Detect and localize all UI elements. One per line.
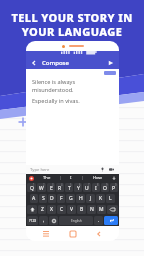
staticText: Y xyxy=(77,185,80,192)
button[interactable]: Key xyxy=(27,205,37,214)
button[interactable]: 4 xyxy=(56,183,64,192)
button[interactable]: 7 xyxy=(83,183,91,192)
button[interactable]: B xyxy=(77,205,86,214)
staticText: Q xyxy=(30,185,34,192)
button[interactable]: N xyxy=(87,205,96,214)
button[interactable]: J xyxy=(86,194,95,203)
staticText: English xyxy=(71,219,82,223)
button[interactable]: 6 xyxy=(74,183,82,192)
button[interactable]: C xyxy=(57,205,66,214)
staticText: U xyxy=(85,185,89,192)
staticText: The xyxy=(43,175,51,181)
staticText: , xyxy=(43,217,45,224)
staticText: Silence is always misunderstood. xyxy=(32,78,113,94)
staticText: C xyxy=(60,206,64,213)
button[interactable]: Emoji xyxy=(39,216,48,225)
button[interactable]: Translate xyxy=(104,71,116,75)
staticText: T xyxy=(68,185,71,192)
staticText: I xyxy=(95,185,97,192)
staticText: . xyxy=(98,217,100,224)
button[interactable]: S xyxy=(39,194,47,203)
staticText: D xyxy=(50,195,54,202)
staticText: ?123 xyxy=(29,218,37,223)
staticText: Especially in vivas. xyxy=(32,97,80,105)
button[interactable]: Send xyxy=(107,59,115,67)
staticText: S xyxy=(42,195,45,202)
staticText: 3 xyxy=(52,183,54,187)
button[interactable]: Back xyxy=(26,56,119,69)
staticText: Type here xyxy=(30,167,50,173)
staticText: E xyxy=(50,185,53,192)
button[interactable]: 5 xyxy=(65,183,73,192)
staticText: N xyxy=(90,206,94,213)
staticText: Z xyxy=(41,206,44,213)
button[interactable]: ?123 xyxy=(27,216,38,225)
button[interactable]: 3 xyxy=(47,183,55,192)
staticText: B xyxy=(80,206,84,213)
staticText: Compose xyxy=(42,59,69,67)
button[interactable]: 9 xyxy=(101,183,109,192)
staticText: M xyxy=(99,206,104,213)
button[interactable]: V xyxy=(67,205,76,214)
staticText: 1 xyxy=(33,183,35,187)
button[interactable]: English xyxy=(59,216,93,225)
button[interactable]: D xyxy=(48,194,56,203)
staticText: 9 xyxy=(106,183,108,187)
staticText: K xyxy=(99,195,103,202)
staticText: I xyxy=(70,175,72,181)
button[interactable]: Settings xyxy=(49,216,58,225)
button[interactable]: G xyxy=(66,194,75,203)
button[interactable]: Recents xyxy=(40,228,52,240)
button[interactable]: K xyxy=(96,194,105,203)
staticText: L xyxy=(109,195,112,202)
staticText: 4 xyxy=(61,183,63,187)
staticText: 0 xyxy=(115,183,117,187)
staticText: TELL YOUR STORY IN YOUR LANGUAGE xyxy=(0,10,144,39)
button[interactable]: H xyxy=(76,194,85,203)
button[interactable]: A xyxy=(30,194,38,203)
button[interactable]: Z xyxy=(38,205,46,214)
button[interactable]: Back xyxy=(30,59,38,67)
staticText: V xyxy=(70,206,74,213)
staticText: 7 xyxy=(88,183,90,187)
staticText: F xyxy=(60,195,63,202)
button[interactable]: M xyxy=(97,205,106,214)
button[interactable]: 2 xyxy=(37,183,46,192)
staticText: H xyxy=(79,195,83,202)
staticText: J xyxy=(90,195,92,202)
button[interactable]: The xyxy=(26,174,119,182)
staticText: 6 xyxy=(79,183,81,187)
button[interactable]: Camera xyxy=(108,166,115,173)
button[interactable]: Voice input xyxy=(99,166,106,173)
staticText: O xyxy=(103,185,107,192)
staticText: P xyxy=(112,185,116,192)
button[interactable]: Home xyxy=(67,228,79,240)
button[interactable]: 8 xyxy=(92,183,100,192)
staticText: A xyxy=(32,195,36,202)
staticText: How xyxy=(93,175,102,181)
staticText: R xyxy=(58,185,62,192)
staticText: W xyxy=(39,185,44,192)
staticText: X xyxy=(50,206,53,213)
button[interactable]: . xyxy=(94,216,103,225)
button[interactable]: 1 xyxy=(27,183,36,192)
staticText: 8 xyxy=(97,183,99,187)
button[interactable]: Key xyxy=(107,205,118,214)
button[interactable]: X xyxy=(47,205,56,214)
staticText: 5 xyxy=(70,183,72,187)
button[interactable]: L xyxy=(106,194,115,203)
button[interactable]: Type here xyxy=(26,165,119,174)
button[interactable]: 0 xyxy=(110,183,118,192)
staticText: 2 xyxy=(43,183,45,187)
button[interactable]: F xyxy=(57,194,65,203)
button[interactable]: Back xyxy=(93,228,105,240)
button[interactable]: Enter xyxy=(104,216,118,225)
staticText: G xyxy=(69,195,73,202)
